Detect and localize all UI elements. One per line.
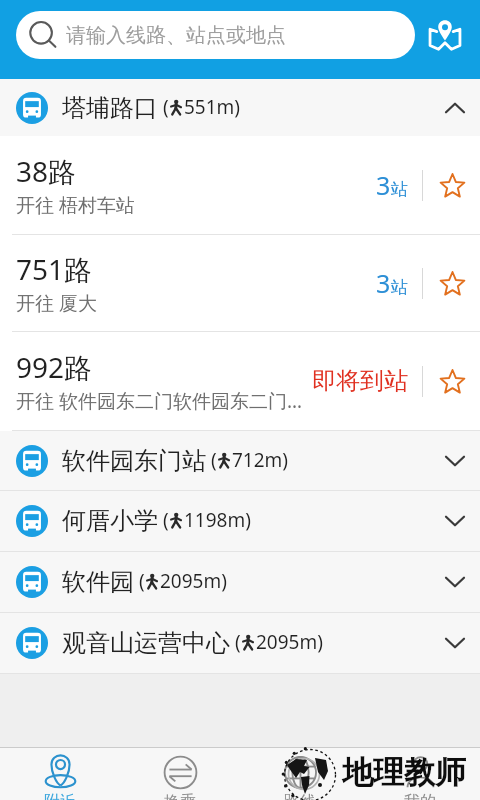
staticText: 请输入线路、站点或地点 [66, 23, 286, 48]
staticText: 我的 [404, 792, 436, 800]
button[interactable]: 751路 [0, 235, 480, 331]
button[interactable]: Favorite [437, 366, 467, 396]
button[interactable]: 软件园东门站 [0, 431, 480, 490]
staticText: ( [235, 629, 241, 655]
staticText: 551m) [184, 94, 241, 120]
staticText: 地理教师 [342, 753, 466, 792]
button[interactable]: 992路 [0, 332, 480, 430]
button[interactable]: 38路 [0, 136, 480, 234]
staticText: 观音山运营中心 [62, 628, 230, 658]
button[interactable]: 软件园 [0, 552, 480, 612]
staticText: 软件园东门站 [62, 446, 206, 476]
button[interactable]: 换乘 [120, 748, 240, 800]
staticText: 712m) [232, 447, 289, 473]
staticText: 换乘 [164, 792, 196, 800]
staticText: 3 [376, 168, 391, 202]
button[interactable]: 我的 [360, 748, 480, 800]
staticText: 即将到站 [312, 366, 408, 396]
button[interactable]: 附近 [0, 748, 120, 800]
staticText: 软件园 [62, 567, 134, 597]
staticText: 3 [376, 266, 391, 300]
button[interactable]: Favorite [437, 170, 467, 200]
staticText: 开往 软件园东二门软件园东二门… [16, 388, 302, 414]
staticText: ( [211, 447, 217, 473]
staticText: 何厝小学 [62, 506, 158, 536]
staticText: ( [163, 507, 169, 533]
staticText: 751路 [16, 250, 93, 288]
staticText: 站 [391, 179, 408, 200]
staticText: 站 [391, 277, 408, 298]
staticText: ( [139, 568, 145, 594]
staticText: 992路 [16, 348, 93, 386]
staticText: 1198m) [184, 507, 251, 533]
staticText: 38路 [16, 152, 77, 190]
button[interactable]: Favorite [437, 268, 467, 298]
button[interactable]: 请输入线路、站点或地点 [16, 11, 415, 59]
staticText: 塔埔路口 [62, 93, 158, 123]
button[interactable]: 观音山运营中心 [0, 613, 480, 673]
staticText: 开往 厦大 [16, 290, 97, 316]
staticText: ( [163, 94, 169, 120]
button[interactable]: 路线 [240, 748, 360, 800]
staticText: 2095m) [160, 568, 227, 594]
button[interactable]: 塔埔路口 [0, 79, 480, 136]
staticText: 路线 [284, 792, 316, 800]
staticText: 附近 [44, 792, 76, 800]
staticText: 开往 梧村车站 [16, 192, 135, 218]
staticText: 2095m) [256, 629, 323, 655]
button[interactable]: Map [421, 11, 469, 59]
button[interactable]: 何厝小学 [0, 491, 480, 551]
